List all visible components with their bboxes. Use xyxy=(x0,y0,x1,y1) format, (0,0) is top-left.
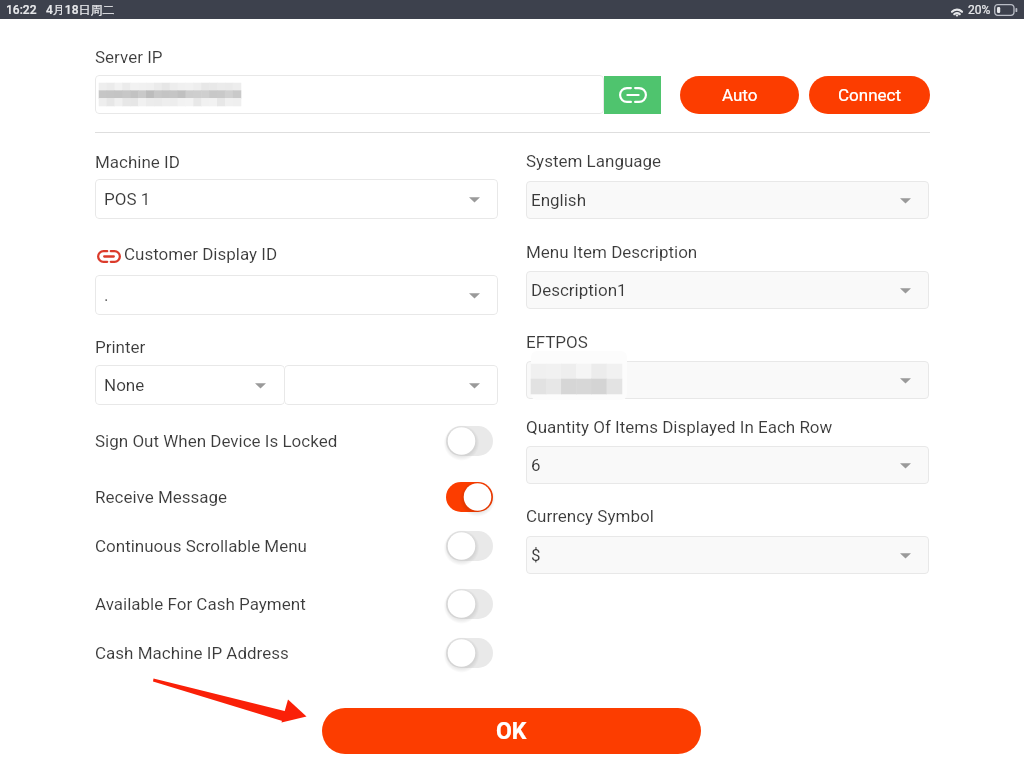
staticText: Description1 xyxy=(531,280,627,300)
button[interactable]: $ xyxy=(526,536,929,574)
staticText: POS 1 xyxy=(104,189,151,209)
staticText: Menu Item Description xyxy=(526,242,698,262)
button[interactable]: Disabled xyxy=(446,426,493,456)
staticText: Quantity Of Items Displayed In Each Row xyxy=(526,417,833,437)
button[interactable]: Sign Out When Device Is Locked xyxy=(95,420,493,462)
staticText: 20% xyxy=(968,3,991,17)
staticText: Cash Machine IP Address xyxy=(95,643,289,663)
button[interactable]: English xyxy=(526,181,929,219)
staticText: Currency Symbol xyxy=(526,506,654,526)
button[interactable]: . xyxy=(95,275,498,315)
button[interactable]: Link xyxy=(604,76,661,114)
button[interactable] xyxy=(526,361,929,399)
button[interactable]: Enabled xyxy=(446,482,493,512)
staticText: Sign Out When Device Is Locked xyxy=(95,431,338,451)
staticText: Server IP xyxy=(95,47,163,67)
staticText: Auto xyxy=(722,85,758,105)
button[interactable]: Cash Machine IP Address xyxy=(95,632,493,674)
staticText: 6 xyxy=(531,455,541,475)
button[interactable] xyxy=(95,75,604,114)
staticText: 4月18日周二 xyxy=(46,2,115,17)
button[interactable]: OK xyxy=(322,708,701,754)
staticText: Receive Message xyxy=(95,487,228,507)
button[interactable]: Disabled xyxy=(446,589,493,619)
button[interactable]: Auto xyxy=(680,76,799,114)
button[interactable]: 6 xyxy=(526,446,929,484)
staticText: Customer Display ID xyxy=(124,244,278,264)
staticText: 16:22 xyxy=(6,3,37,17)
staticText: None xyxy=(104,375,145,395)
button[interactable]: Continuous Scrollable Menu xyxy=(95,525,493,567)
button[interactable]: Available For Cash Payment xyxy=(95,583,493,625)
staticText: Available For Cash Payment xyxy=(95,594,306,614)
staticText: Printer xyxy=(95,337,146,357)
staticText: System Language xyxy=(526,151,662,171)
staticText: . xyxy=(104,285,109,305)
staticText: Machine ID xyxy=(95,152,180,172)
button[interactable]: Disabled xyxy=(446,531,493,561)
staticText: Continuous Scrollable Menu xyxy=(95,536,307,556)
staticText: EFTPOS xyxy=(526,332,588,352)
button[interactable]: Description1 xyxy=(526,271,929,309)
button[interactable] xyxy=(284,365,498,405)
staticText: English xyxy=(531,190,587,210)
button[interactable]: None xyxy=(95,365,285,405)
button[interactable]: Receive Message xyxy=(95,476,493,518)
button[interactable]: POS 1 xyxy=(95,179,498,219)
staticText: $ xyxy=(531,545,541,565)
button[interactable]: Disabled xyxy=(446,638,493,668)
staticText: OK xyxy=(496,718,527,745)
button[interactable]: Connect xyxy=(809,76,930,114)
staticText: Connect xyxy=(838,85,902,105)
